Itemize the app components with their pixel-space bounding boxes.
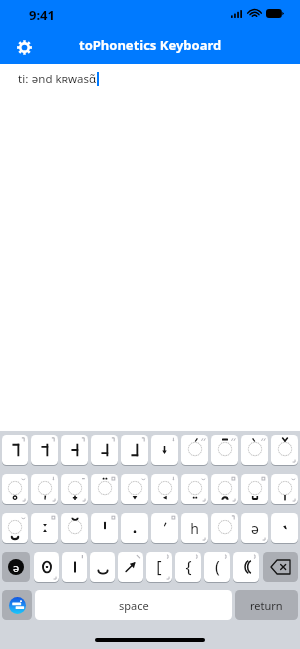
button[interactable]: Backspace (263, 552, 298, 582)
button[interactable] (91, 474, 118, 504)
button[interactable] (61, 474, 88, 504)
button[interactable] (233, 552, 259, 582)
staticText: ə (251, 519, 259, 538)
button[interactable] (31, 435, 58, 465)
button[interactable]: Shift schwa (2, 552, 30, 582)
staticText: { (185, 556, 192, 578)
button[interactable] (2, 513, 28, 543)
button[interactable]: ə (241, 513, 268, 543)
button[interactable]: { (175, 552, 201, 582)
button[interactable] (91, 435, 118, 465)
staticText: h (190, 519, 199, 538)
button[interactable]: [ (146, 552, 172, 582)
button[interactable] (118, 552, 143, 582)
button[interactable] (181, 435, 208, 465)
staticText: [ (156, 556, 162, 578)
button[interactable] (121, 435, 148, 465)
button[interactable] (211, 435, 238, 465)
button[interactable] (2, 474, 28, 504)
button[interactable] (90, 552, 115, 582)
button[interactable]: Settings (12, 33, 36, 57)
button[interactable] (62, 552, 87, 582)
button[interactable] (271, 474, 298, 504)
staticText: 9:41 (29, 6, 55, 24)
button[interactable] (211, 513, 238, 543)
button[interactable] (211, 474, 238, 504)
button[interactable] (151, 513, 178, 543)
button[interactable] (61, 513, 88, 543)
staticText: space (119, 598, 149, 613)
staticText: return (250, 598, 283, 613)
staticText: ( (215, 556, 220, 578)
button[interactable]: return (235, 590, 298, 620)
button[interactable] (241, 474, 268, 504)
button[interactable] (61, 435, 88, 465)
button[interactable] (151, 435, 178, 465)
button[interactable] (151, 474, 178, 504)
button[interactable] (2, 435, 28, 465)
button[interactable] (121, 474, 148, 504)
button[interactable]: Switch keyboard (2, 590, 32, 620)
staticText: tiː ənd kʀwasɑ̃ (18, 71, 97, 87)
button[interactable] (34, 552, 59, 582)
button[interactable] (241, 435, 268, 465)
button[interactable] (181, 474, 208, 504)
staticText: toPhonetics Keyboard (79, 36, 222, 54)
button[interactable]: ( (204, 552, 230, 582)
button[interactable] (31, 474, 58, 504)
button[interactable]: space (35, 590, 232, 620)
button[interactable] (271, 513, 298, 543)
button[interactable] (91, 513, 118, 543)
button[interactable]: h (181, 513, 208, 543)
button[interactable] (121, 513, 148, 543)
button[interactable] (31, 513, 58, 543)
button[interactable] (271, 435, 298, 465)
staticText: ə (13, 560, 20, 575)
